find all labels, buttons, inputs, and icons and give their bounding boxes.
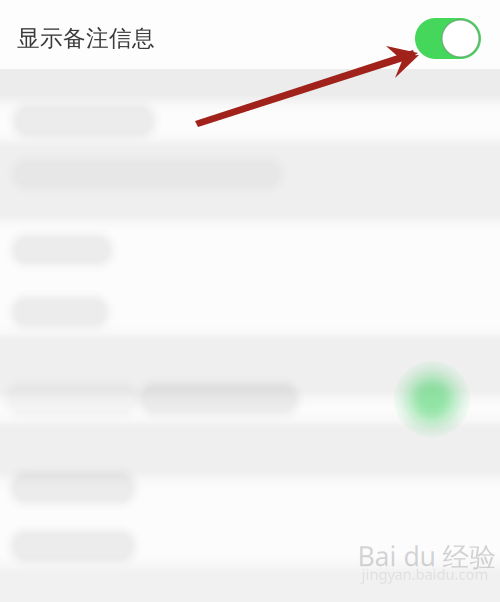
button[interactable]: 显示备注信息: [0, 0, 500, 69]
staticText: jingyan.baidu.com: [361, 564, 488, 584]
staticText: Bai du 经验: [357, 538, 496, 574]
staticText: 显示备注信息: [17, 25, 155, 52]
